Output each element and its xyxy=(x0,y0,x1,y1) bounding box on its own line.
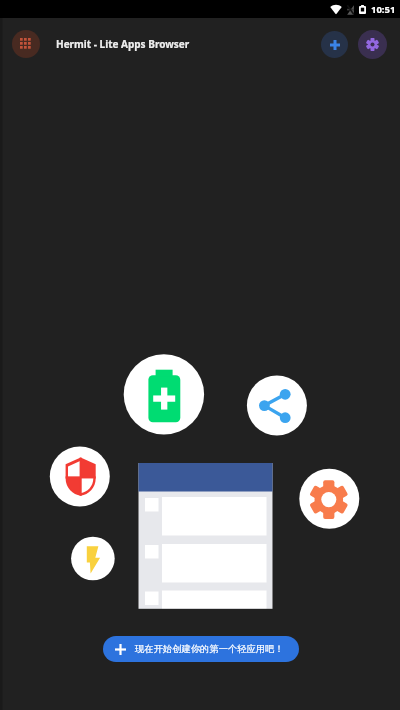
button[interactable]: App icon xyxy=(12,30,40,58)
button[interactable]: 现在开始创建你的第一个轻应用吧！ xyxy=(103,636,299,662)
button[interactable]: Settings xyxy=(358,30,387,59)
staticText: Hermit - Lite Apps Browser xyxy=(56,37,190,51)
button[interactable]: Add lite app xyxy=(321,31,348,58)
staticText: 现在开始创建你的第一个轻应用吧！ xyxy=(135,643,284,655)
staticText: 10:51 xyxy=(371,3,396,16)
